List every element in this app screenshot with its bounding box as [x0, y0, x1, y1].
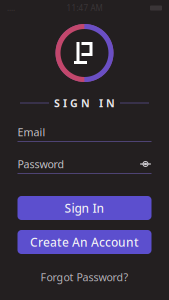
staticText: Password [17, 157, 64, 171]
button[interactable]: Sign In [17, 196, 151, 220]
button[interactable]: Password [17, 158, 151, 174]
staticText: S I G N I N [54, 96, 115, 110]
staticText: Sign In [64, 200, 104, 216]
staticText: Email [17, 125, 45, 139]
staticText: Forgot Password? [40, 270, 128, 284]
staticText: 11:47 AM [66, 3, 102, 13]
staticText: .... [7, 3, 19, 13]
staticText: Create An Account [30, 234, 139, 250]
button[interactable]: Create An Account [17, 230, 151, 254]
button[interactable]: Forgot Password? [32, 267, 136, 287]
button[interactable]: Email [17, 126, 151, 142]
